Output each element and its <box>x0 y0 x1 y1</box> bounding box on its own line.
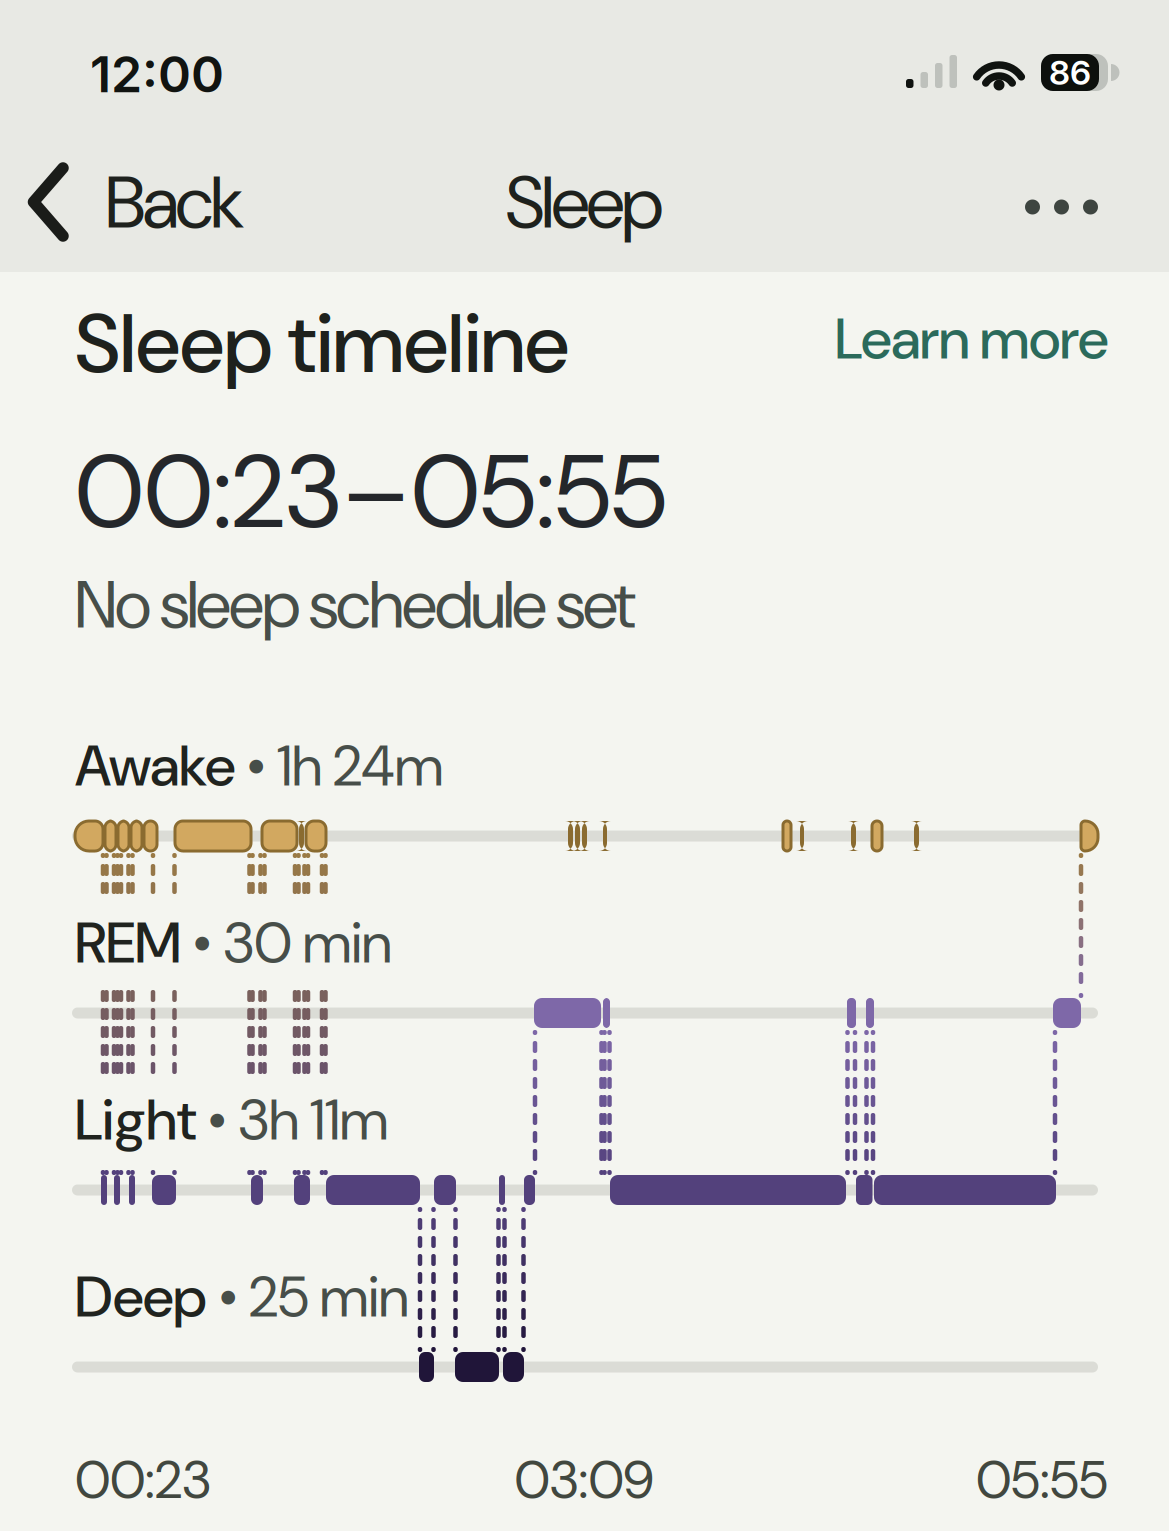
staticText: REM <box>75 906 181 980</box>
staticText: No sleep schedule set <box>75 562 636 648</box>
button[interactable]: Back <box>0 147 280 257</box>
staticText: 03:09 <box>514 1445 653 1514</box>
staticText: 86 <box>1049 52 1091 93</box>
staticText: 05:55 <box>976 1445 1108 1514</box>
staticText: 12:00 <box>90 44 224 104</box>
staticText: Sleep <box>505 156 663 250</box>
staticText: Awake <box>75 729 235 803</box>
staticText: • 3h 11m <box>196 1083 388 1157</box>
staticText: Sleep timeline <box>75 291 569 397</box>
staticText: Learn more <box>835 302 1108 376</box>
staticText: Deep <box>75 1260 207 1334</box>
staticText: 00:23 <box>75 1445 211 1514</box>
button[interactable]: Learn more <box>835 302 1108 376</box>
staticText: Back <box>105 156 244 250</box>
button[interactable]: More options <box>1005 179 1118 234</box>
staticText: • 25 min <box>207 1260 409 1334</box>
staticText: • 1h 24m <box>235 729 443 803</box>
staticText: Light <box>75 1083 196 1157</box>
staticText: 00:23–05:55 <box>75 425 667 559</box>
staticText: • 30 min <box>181 906 392 980</box>
